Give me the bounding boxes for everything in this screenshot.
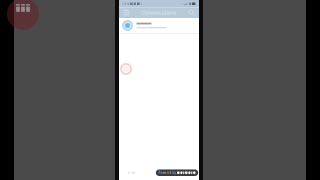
staticText: Powered by xyxy=(158,171,175,174)
button[interactable]: Menu xyxy=(121,7,132,18)
button[interactable]: Powered by xyxy=(156,169,198,176)
button[interactable]: Search xyxy=(186,7,197,18)
button[interactable] xyxy=(119,18,199,34)
staticText: Conversations xyxy=(141,9,176,16)
